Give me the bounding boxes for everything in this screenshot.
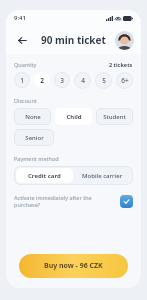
staticText: 5	[102, 76, 106, 85]
button[interactable]: 1	[14, 72, 30, 88]
button[interactable]: Child	[55, 108, 92, 125]
button[interactable]: Buy now - 96 CZK	[19, 254, 128, 278]
button[interactable]: Senior	[14, 129, 54, 146]
staticText: Student	[103, 113, 126, 121]
staticText: Discount	[14, 97, 37, 104]
staticText: 9:41	[14, 14, 26, 22]
button[interactable]: Activate immediately after the purchase?	[14, 194, 133, 208]
staticText: None	[25, 113, 41, 121]
staticText: 2	[40, 76, 44, 85]
staticText: Mobile carrier	[82, 172, 123, 180]
staticText: 6+	[121, 76, 129, 85]
button[interactable]: 2	[34, 72, 50, 88]
button[interactable]: Back	[13, 31, 31, 49]
button[interactable]: 4	[74, 72, 91, 89]
button[interactable]: 5	[95, 72, 112, 89]
button[interactable]: Mobile carrier	[73, 168, 131, 183]
staticText: 90 min ticket	[41, 33, 106, 47]
staticText: Senior	[25, 134, 44, 142]
staticText: Quantity	[14, 61, 37, 68]
button[interactable]: None	[14, 108, 51, 125]
button[interactable]: Profile	[115, 31, 134, 50]
button[interactable]: Student	[96, 108, 133, 125]
staticText: 2 tickets	[109, 61, 133, 68]
button[interactable]: 3	[54, 72, 70, 88]
staticText: 4	[81, 76, 85, 85]
staticText: 3	[60, 76, 64, 85]
staticText: Payment method	[14, 155, 59, 162]
staticText: Credit card	[28, 172, 61, 180]
staticText: Activate immediately after the purchase?	[14, 194, 116, 208]
staticText: Child	[66, 113, 82, 121]
button[interactable]: Credit card	[16, 168, 73, 183]
button[interactable]: 6+	[116, 72, 133, 89]
staticText: 1	[20, 76, 24, 85]
staticText: Buy now - 96 CZK	[44, 261, 103, 271]
